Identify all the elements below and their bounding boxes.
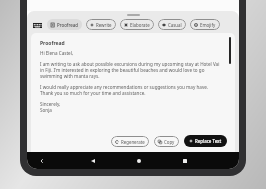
staticText: Regenerate: [121, 139, 145, 145]
staticText: Elaborate: [130, 22, 150, 28]
button[interactable]: Keyboard: [32, 20, 42, 30]
button[interactable]: Casual: [158, 19, 186, 30]
button[interactable]: Home: [127, 152, 151, 169]
staticText: Proofread: [57, 22, 78, 28]
button[interactable]: Emojify: [190, 19, 220, 30]
staticText: I am writing to ask about possible excur…: [40, 61, 222, 79]
button[interactable]: Recent apps: [173, 152, 197, 169]
staticText: Sincerely,: [40, 101, 61, 107]
button[interactable]: Copy: [154, 136, 179, 147]
staticText: I would really appreciate any recommenda…: [40, 84, 222, 96]
staticText: Replace Text: [195, 138, 222, 144]
button[interactable]: Rewrite: [86, 19, 116, 30]
staticText: Casual: [168, 22, 182, 28]
button[interactable]: Regenerate: [111, 136, 149, 147]
button[interactable]: Replace Text: [184, 135, 227, 147]
staticText: Proofread: [40, 40, 65, 47]
staticText: Rewrite: [96, 22, 112, 28]
button[interactable]: Back: [81, 152, 105, 169]
button[interactable]: Elaborate: [120, 19, 154, 30]
staticText: Copy: [164, 139, 175, 145]
button[interactable]: Proofread: [47, 19, 82, 30]
staticText: Emojify: [200, 22, 216, 28]
button[interactable]: Navigate up: [27, 152, 57, 169]
staticText: Hi Elena Castel,: [40, 50, 74, 56]
staticText: Sonja: [40, 107, 52, 113]
